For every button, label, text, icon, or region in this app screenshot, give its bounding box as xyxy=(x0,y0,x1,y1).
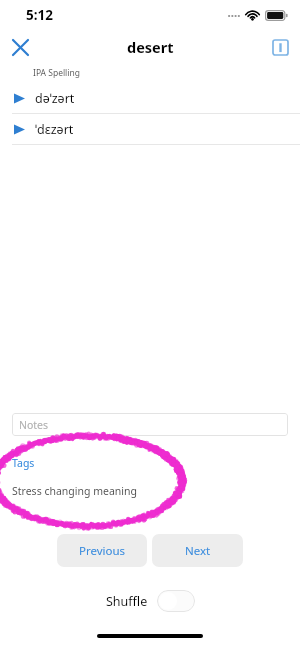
button[interactable]: Previous xyxy=(57,534,147,567)
staticText: IPA Spelling xyxy=(33,67,80,79)
staticText: Notes xyxy=(19,418,49,432)
staticText: 5:12 xyxy=(26,6,53,24)
staticText: Stress changing meaning xyxy=(12,484,137,498)
button[interactable]: Next xyxy=(152,534,243,567)
staticText: Shuffle xyxy=(106,593,148,610)
button[interactable]: dəˈzərt xyxy=(0,83,300,113)
button[interactable]: ˈdɛzərt xyxy=(0,114,300,144)
staticText: ˈdɛzərt xyxy=(35,121,74,138)
button[interactable]: Notes xyxy=(12,413,288,436)
button[interactable]: Shuffle toggle xyxy=(157,590,195,612)
staticText: dəˈzərt xyxy=(35,90,75,107)
staticText: Next xyxy=(185,543,211,559)
staticText: Previous xyxy=(79,543,126,559)
staticText: desert xyxy=(127,37,174,57)
button[interactable]: Close xyxy=(5,32,35,62)
button[interactable]: Info xyxy=(265,32,295,62)
staticText: Tags xyxy=(12,456,35,470)
button[interactable]: Tags xyxy=(12,456,35,470)
